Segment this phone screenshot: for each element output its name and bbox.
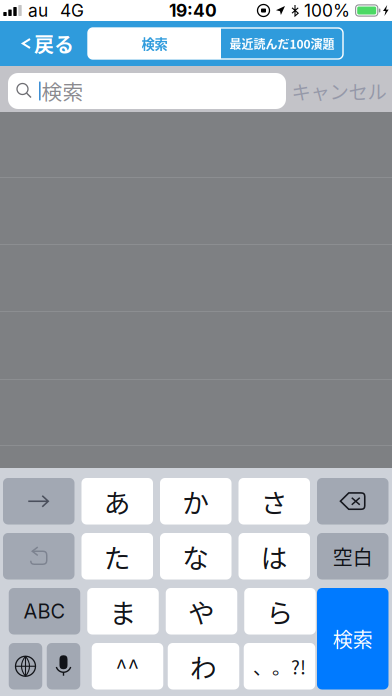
staticText: ら [266, 592, 293, 630]
staticText: か [182, 482, 209, 520]
staticText: あ [104, 482, 131, 520]
staticText: 検索 [141, 34, 167, 53]
staticText: ^^ [115, 651, 139, 682]
button[interactable]: は [238, 533, 310, 579]
staticText: キャンセル [291, 77, 386, 105]
button[interactable] [3, 478, 74, 524]
staticText: 19:40 [169, 0, 217, 21]
staticText: わ [190, 647, 217, 685]
staticText: 検索 [333, 624, 373, 653]
button[interactable] [3, 533, 74, 579]
button[interactable]: ABC [9, 588, 80, 634]
staticText: 100% [304, 0, 350, 21]
button[interactable] [9, 643, 42, 689]
button[interactable]: キャンセル [286, 71, 392, 111]
staticText: 最近読んだ100演題 [229, 35, 334, 52]
staticText: 検索 [42, 76, 84, 106]
button[interactable] [317, 478, 388, 524]
button[interactable]: さ [238, 478, 310, 524]
button[interactable]: 検索 [317, 588, 388, 689]
staticText: や [188, 592, 215, 630]
button[interactable]: ら [244, 588, 316, 634]
button[interactable]: や [166, 588, 237, 634]
button[interactable]: 、。?! [244, 643, 315, 689]
button[interactable]: 戻る [0, 21, 88, 66]
button[interactable] [47, 643, 80, 689]
button[interactable]: 検索 [88, 28, 221, 59]
button[interactable]: 最近読んだ100演題 [221, 28, 343, 59]
staticText: ABC [23, 599, 65, 623]
staticText: た [104, 537, 131, 575]
button[interactable]: わ [168, 643, 239, 689]
button[interactable]: た [81, 533, 153, 579]
staticText: 空白 [333, 542, 373, 571]
staticText: ま [109, 592, 136, 630]
button[interactable]: ^^ [92, 643, 163, 689]
button[interactable]: あ [81, 478, 153, 524]
button[interactable]: な [160, 533, 231, 579]
staticText: au [28, 0, 48, 21]
button[interactable]: 空白 [317, 533, 388, 579]
staticText: さ [261, 482, 288, 520]
staticText: 、。?! [253, 653, 306, 680]
staticText: 戻る [34, 29, 74, 58]
staticText: な [182, 537, 209, 575]
staticText: 4G [60, 0, 84, 21]
button[interactable]: ま [87, 588, 159, 634]
button[interactable]: か [160, 478, 231, 524]
staticText: は [261, 537, 288, 575]
